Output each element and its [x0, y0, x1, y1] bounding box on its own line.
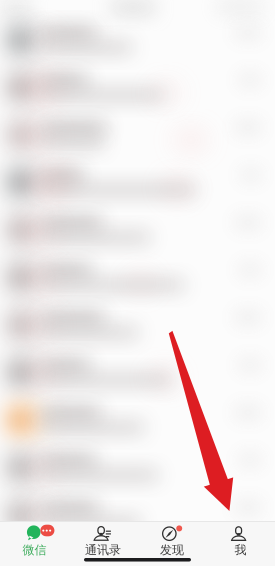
- staticText: 微信: [22, 543, 46, 557]
- button[interactable]: 我: [206, 521, 275, 566]
- button[interactable]: 通讯录: [69, 521, 137, 566]
- staticText: 我: [235, 543, 247, 557]
- staticText: 通讯录: [85, 543, 121, 557]
- staticText: 发现: [160, 543, 184, 557]
- button[interactable]: 微信: [0, 521, 69, 566]
- button[interactable]: 发现: [137, 521, 206, 566]
